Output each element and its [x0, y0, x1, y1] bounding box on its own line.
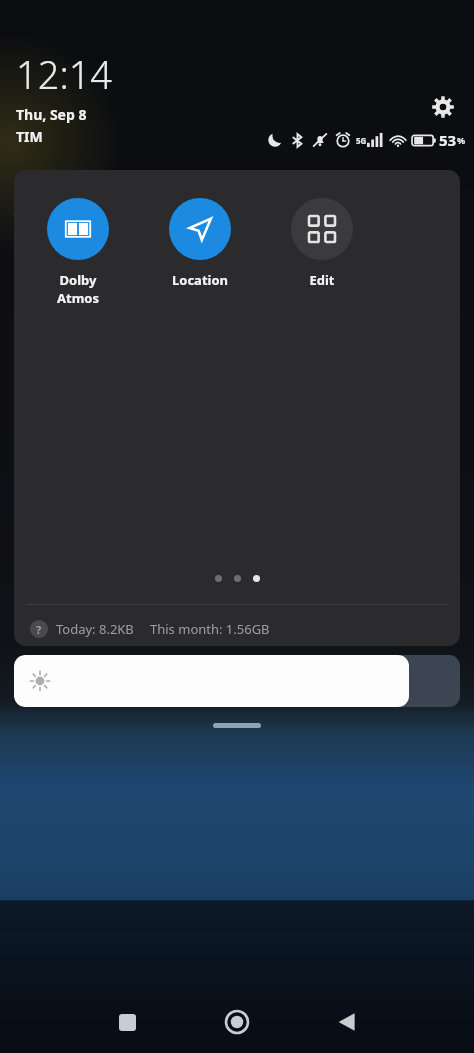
staticText: Dolby Atmos [40, 271, 116, 307]
button[interactable]: Edit [284, 198, 360, 289]
button[interactable]: Collapse shade [213, 723, 261, 728]
staticText: % [457, 134, 466, 146]
staticText: Location [172, 271, 228, 289]
staticText: ? [36, 622, 42, 637]
button[interactable]: Brightness [14, 655, 460, 707]
staticText: Edit [309, 271, 335, 289]
staticText: This month: 1.56GB [150, 620, 270, 638]
staticText: Thu, Sep 8 [16, 105, 87, 124]
staticText: 53 [439, 130, 457, 150]
staticText: TIM [16, 127, 43, 146]
button[interactable]: Settings [426, 90, 460, 124]
staticText: 12:14 [16, 48, 113, 100]
button[interactable]: ? [26, 616, 274, 642]
button[interactable]: Location [162, 198, 238, 289]
staticText: 5G [356, 135, 367, 146]
button[interactable]: Dolby Atmos [40, 198, 116, 307]
button[interactable]: Home [210, 995, 264, 1049]
staticText: Today: 8.2KB [56, 620, 134, 638]
button[interactable]: Recents [100, 995, 154, 1049]
button[interactable]: Back [320, 995, 374, 1049]
